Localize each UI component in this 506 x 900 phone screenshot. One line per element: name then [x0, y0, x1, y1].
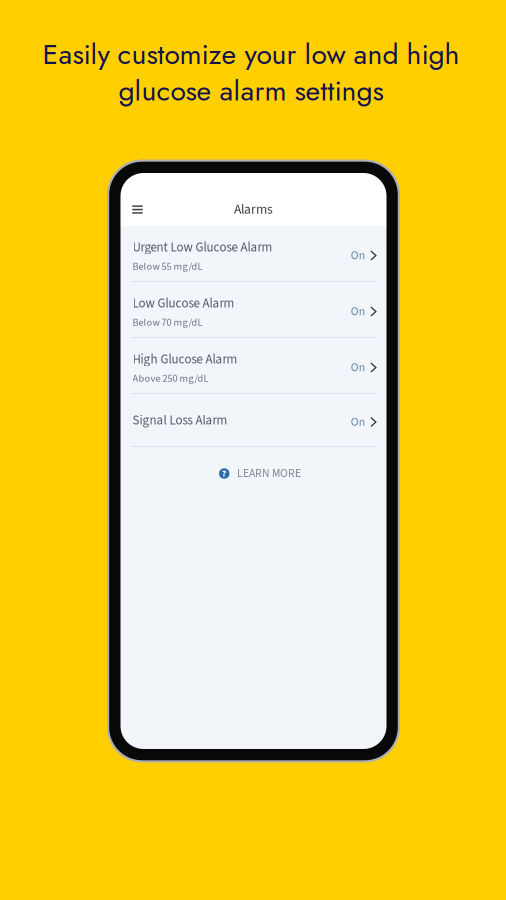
- staticText: Low Glucose Alarm: [132, 294, 234, 313]
- staticText: On: [351, 414, 365, 430]
- staticText: High Glucose Alarm: [132, 350, 237, 369]
- button[interactable]: Urgent Low Glucose Alarm: [120, 226, 386, 281]
- staticText: Above 250 mg/dL: [132, 371, 208, 386]
- staticText: glucose alarm settings: [118, 70, 383, 111]
- staticText: LEARN MORE: [237, 465, 301, 482]
- staticText: Easily customize your low and high: [42, 34, 459, 75]
- staticText: ?: [222, 466, 227, 481]
- staticText: On: [351, 303, 365, 320]
- button[interactable]: Menu: [126, 197, 148, 222]
- staticText: On: [351, 247, 365, 264]
- staticText: Alarms: [234, 200, 273, 219]
- button[interactable]: Low Glucose Alarm: [120, 282, 386, 337]
- button[interactable]: ?: [120, 447, 386, 500]
- staticText: Below 70 mg/dL: [132, 315, 202, 330]
- button[interactable]: High Glucose Alarm: [120, 338, 386, 393]
- button[interactable]: Signal Loss Alarm: [120, 394, 386, 446]
- staticText: Urgent Low Glucose Alarm: [132, 238, 272, 257]
- staticText: Below 55 mg/dL: [132, 259, 202, 274]
- staticText: On: [351, 359, 365, 376]
- staticText: Signal Loss Alarm: [132, 411, 227, 430]
